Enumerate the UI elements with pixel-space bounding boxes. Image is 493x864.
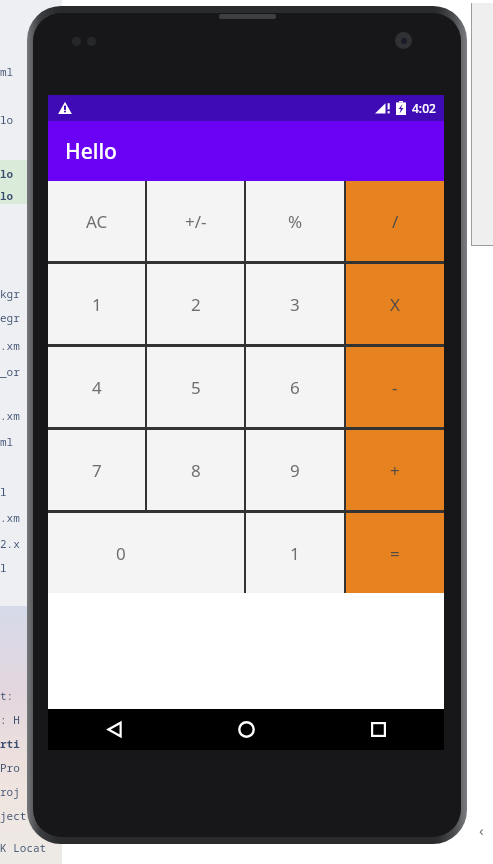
staticText: kgr	[0, 286, 20, 301]
button[interactable]: 6	[246, 347, 344, 427]
staticText: -	[392, 376, 398, 399]
staticText: ml	[0, 434, 14, 449]
button[interactable]: 1	[48, 264, 145, 344]
button[interactable]: 1	[246, 513, 344, 593]
staticText: : H	[0, 712, 20, 727]
staticText: ml	[0, 64, 14, 79]
staticText: 1	[290, 542, 300, 565]
staticText: 2.x	[0, 536, 20, 551]
staticText: lo	[0, 166, 14, 181]
staticText: .xm	[0, 510, 20, 525]
staticText: roj	[0, 784, 20, 799]
button[interactable]: 3	[246, 264, 344, 344]
button[interactable]: 7	[48, 430, 145, 510]
staticText: =	[390, 542, 400, 565]
staticText: +/-	[185, 210, 207, 233]
button[interactable]: 5	[147, 347, 244, 427]
staticText: 7	[92, 459, 102, 482]
staticText: egr	[0, 310, 20, 325]
button[interactable]: +	[346, 430, 444, 510]
staticText: Hello	[65, 137, 117, 166]
staticText: %	[288, 210, 303, 233]
staticText: K Locat	[0, 840, 47, 855]
staticText: lo	[0, 188, 14, 203]
staticText: X	[390, 293, 400, 316]
button[interactable]: 2	[147, 264, 244, 344]
staticText: ject	[0, 808, 27, 823]
staticText: lo	[0, 112, 14, 127]
button[interactable]: X	[346, 264, 444, 344]
staticText: /	[392, 210, 399, 233]
staticText: 2	[191, 293, 201, 316]
staticText: AC	[86, 210, 108, 233]
button[interactable]: /	[346, 181, 444, 261]
button[interactable]: 9	[246, 430, 344, 510]
button[interactable]: 8	[147, 430, 244, 510]
staticText: .xm	[0, 408, 20, 423]
staticText: ‹	[479, 820, 484, 840]
staticText: 0	[116, 542, 126, 565]
button[interactable]: 0	[48, 513, 244, 593]
button[interactable]: -	[346, 347, 444, 427]
staticText: Pro	[0, 760, 20, 775]
staticText: l	[0, 484, 7, 499]
staticText: 6	[290, 376, 300, 399]
button[interactable]: Back	[48, 709, 180, 750]
button[interactable]: =	[346, 513, 444, 593]
button[interactable]: 4	[48, 347, 145, 427]
staticText: rti	[0, 736, 20, 751]
staticText: l	[0, 560, 7, 575]
staticText: t:	[0, 688, 14, 703]
staticText: 8	[191, 459, 201, 482]
staticText: +	[390, 459, 400, 482]
staticText: 4	[92, 376, 102, 399]
staticText: _or	[0, 364, 20, 379]
staticText: .xm	[0, 338, 20, 353]
staticText: 1	[92, 293, 102, 316]
button[interactable]: Home	[180, 709, 312, 750]
button[interactable]: AC	[48, 181, 145, 261]
button[interactable]: %	[246, 181, 344, 261]
staticText: 3	[290, 293, 300, 316]
button[interactable]: Hello	[48, 121, 444, 181]
button[interactable]: +/-	[147, 181, 244, 261]
staticText: 4:02	[412, 100, 436, 116]
staticText: 9	[290, 459, 300, 482]
button[interactable]: Recents	[312, 709, 444, 750]
staticText: 5	[191, 376, 201, 399]
